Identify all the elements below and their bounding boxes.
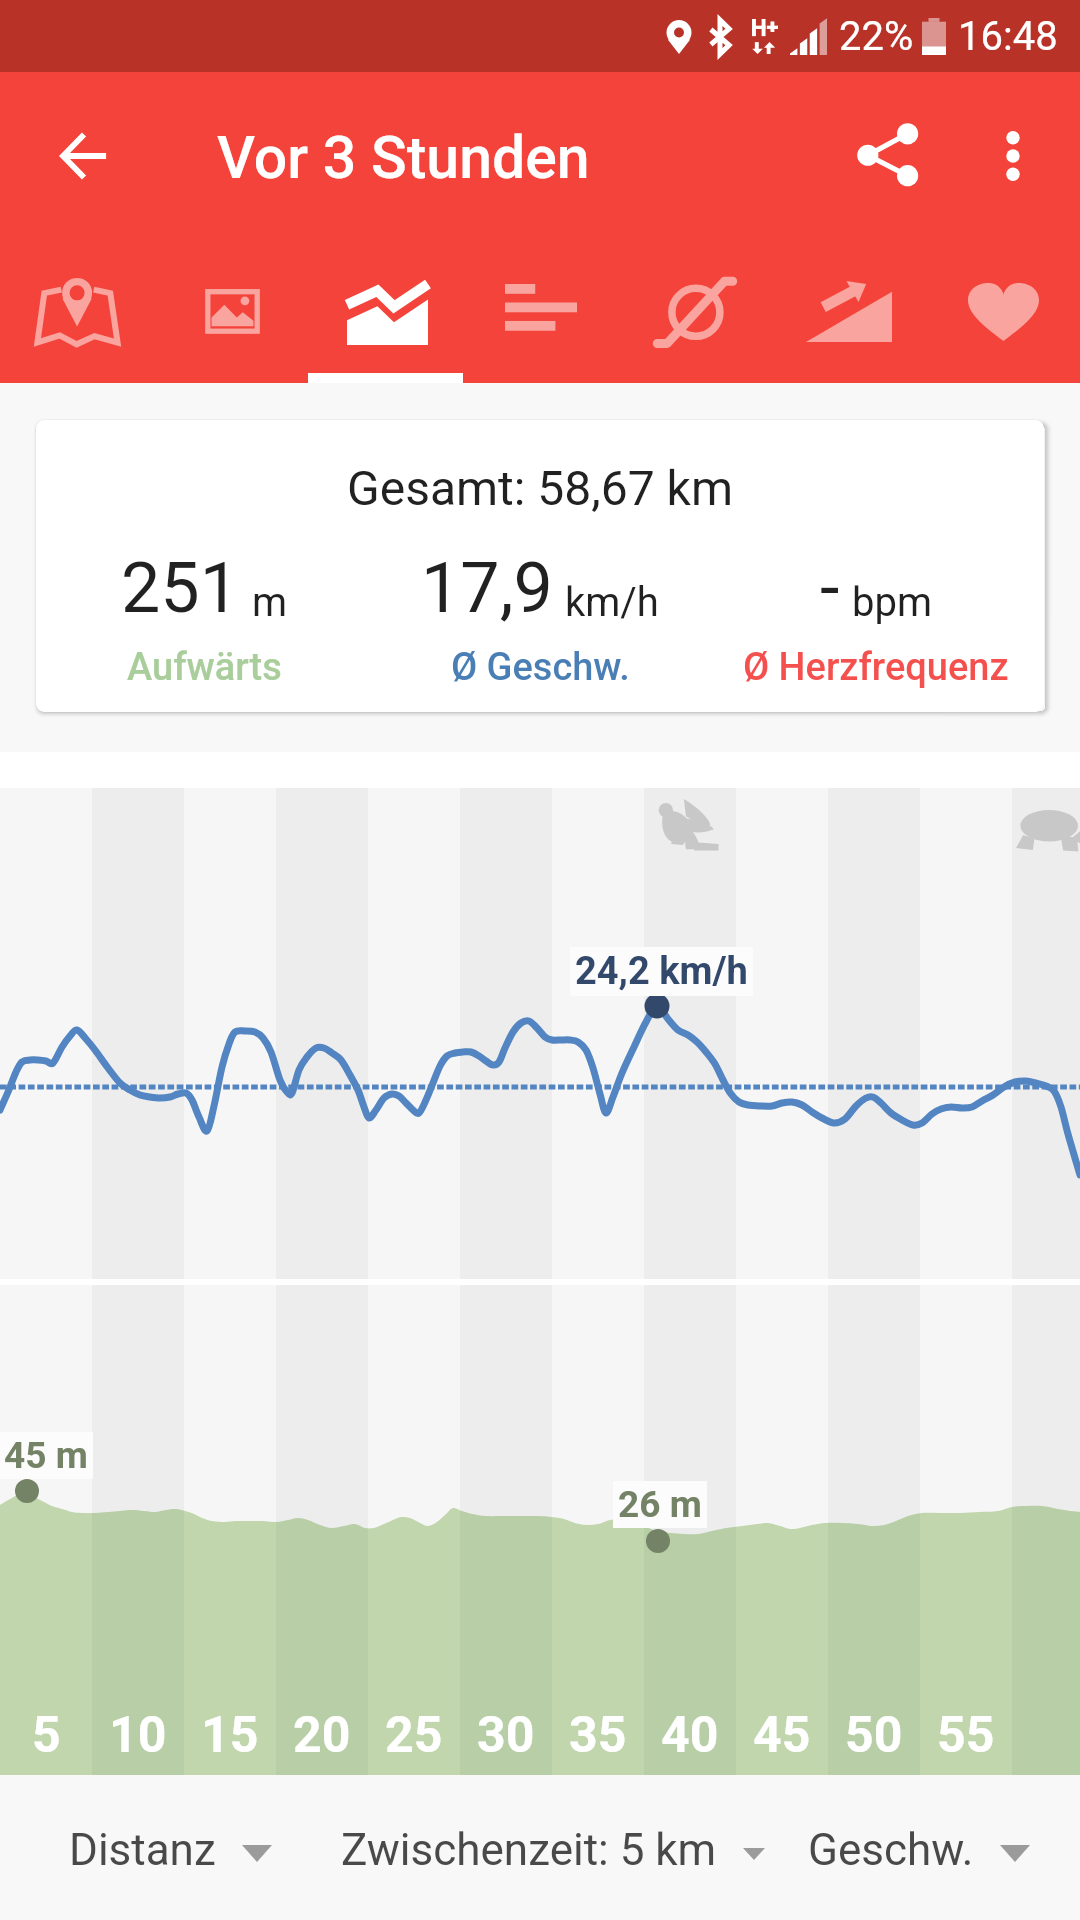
button[interactable]: Chart <box>310 240 464 383</box>
button[interactable]: Map <box>0 240 155 383</box>
staticText: 35 <box>569 1706 627 1765</box>
staticText: 25 <box>385 1706 443 1765</box>
staticText: - <box>820 547 840 629</box>
staticText: 20 <box>293 1706 351 1765</box>
staticText: 45 <box>753 1706 811 1765</box>
staticText: km/h <box>565 579 659 626</box>
staticText: 26 m <box>618 1483 702 1526</box>
staticText: Gesamt: 58,67 km <box>36 460 1044 516</box>
button[interactable]: Share <box>840 107 936 203</box>
staticText: Distanz <box>69 1824 216 1876</box>
button[interactable]: Photos <box>155 240 310 383</box>
button[interactable]: Elevation <box>772 240 926 383</box>
staticText: Vor 3 Stunden <box>217 123 590 192</box>
button[interactable]: Geschw. <box>808 1775 1030 1920</box>
button[interactable]: Distanz <box>69 1775 272 1920</box>
staticText: 251 <box>121 547 240 629</box>
staticText: 30 <box>477 1706 535 1765</box>
button[interactable]: Splits <box>464 240 618 383</box>
staticText: Zwischenzeit: 5 km <box>341 1824 717 1876</box>
staticText: bpm <box>852 579 932 626</box>
staticText: Geschw. <box>808 1824 974 1876</box>
staticText: m <box>252 579 288 626</box>
button[interactable]: More options <box>965 108 1061 204</box>
staticText: 50 <box>845 1706 903 1765</box>
staticText: Aufwärts <box>127 645 282 690</box>
staticText: 40 <box>661 1706 719 1765</box>
staticText: Ø Herzfrequenz <box>743 645 1009 690</box>
staticText: 16:48 <box>958 13 1058 60</box>
button[interactable]: Laps <box>618 240 772 383</box>
staticText: Ø Geschw. <box>451 645 630 690</box>
staticText: 24,2 km/h <box>575 949 748 994</box>
staticText: 15 <box>201 1706 259 1765</box>
staticText: 10 <box>109 1706 167 1765</box>
button[interactable]: Zwischenzeit: 5 km <box>341 1775 765 1920</box>
staticText: 5 <box>32 1706 61 1765</box>
button[interactable]: Heart rate <box>926 240 1080 383</box>
button[interactable]: Back <box>36 108 132 204</box>
staticText: 22% <box>839 13 914 60</box>
staticText: 45 m <box>4 1434 88 1477</box>
staticText: 17,9 <box>421 547 553 629</box>
staticText: 55 <box>937 1706 995 1765</box>
